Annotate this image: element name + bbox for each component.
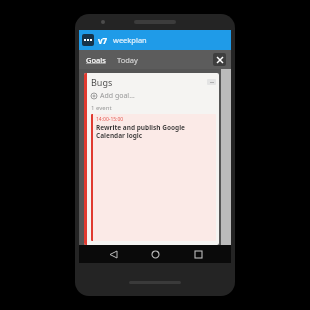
staticText: Today (117, 55, 138, 65)
button[interactable]: App logo (82, 34, 94, 46)
staticText: Add goal… (100, 91, 135, 101)
button[interactable]: Bugs (84, 73, 219, 245)
staticText: v7 (98, 35, 108, 46)
button[interactable]: Home (146, 245, 164, 263)
button[interactable]: Goals (84, 53, 108, 67)
staticText: weekplan (113, 35, 147, 45)
button[interactable]: Back (104, 245, 122, 263)
staticText: 1 event (91, 104, 112, 112)
staticText: 14:00-15:00 (96, 116, 124, 123)
button[interactable]: More options (207, 79, 216, 85)
button[interactable]: 14:00-15:00 (91, 114, 216, 241)
button[interactable]: Close (213, 53, 226, 66)
staticText: Rewrite and publish Google Calendar logi… (96, 123, 213, 140)
button[interactable]: Today (115, 53, 140, 67)
button[interactable]: Recents (189, 245, 207, 263)
staticText: Bugs (91, 76, 207, 88)
staticText: Goals (86, 55, 106, 65)
button[interactable]: Add goal… (91, 91, 135, 101)
